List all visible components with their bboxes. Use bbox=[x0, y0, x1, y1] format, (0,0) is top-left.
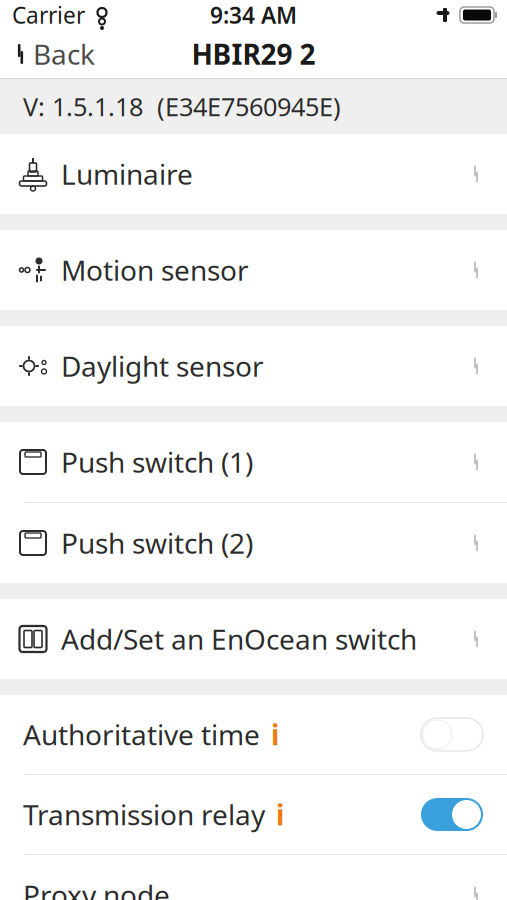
staticText: HBIR29 2 bbox=[191, 35, 315, 73]
staticText: i bbox=[276, 796, 284, 833]
button[interactable]: Authoritative time bbox=[0, 695, 507, 774]
staticText: Push switch (1) bbox=[61, 443, 253, 481]
staticText: Push switch (2) bbox=[61, 524, 253, 562]
staticText: Carrier bbox=[12, 0, 85, 30]
staticText: Motion sensor bbox=[61, 251, 249, 289]
button[interactable]: Daylight sensor bbox=[0, 326, 507, 406]
staticText: i bbox=[271, 716, 279, 753]
staticText: Proxy node bbox=[23, 876, 170, 900]
staticText: V: 1.5.1.18 (E34E7560945E) bbox=[23, 90, 341, 123]
button[interactable]: Proxy node bbox=[0, 855, 507, 900]
staticText: Back bbox=[33, 35, 95, 73]
button[interactable]: Transmission relay bbox=[0, 775, 507, 854]
staticText: 9:34 AM bbox=[210, 0, 297, 30]
staticText: Add/Set an EnOcean switch bbox=[61, 620, 417, 658]
button[interactable]: Back bbox=[0, 30, 105, 78]
staticText: Daylight sensor bbox=[61, 347, 264, 385]
staticText: Authoritative time bbox=[23, 716, 260, 753]
button[interactable]: Add/Set an EnOcean switch bbox=[0, 599, 507, 679]
button[interactable]: Luminaire bbox=[0, 134, 507, 214]
staticText: Luminaire bbox=[61, 155, 193, 193]
button[interactable]: Push switch (1) bbox=[0, 422, 507, 502]
button[interactable]: Push switch (2) bbox=[0, 503, 507, 583]
staticText: Transmission relay bbox=[23, 796, 265, 833]
button[interactable]: Motion sensor bbox=[0, 230, 507, 310]
